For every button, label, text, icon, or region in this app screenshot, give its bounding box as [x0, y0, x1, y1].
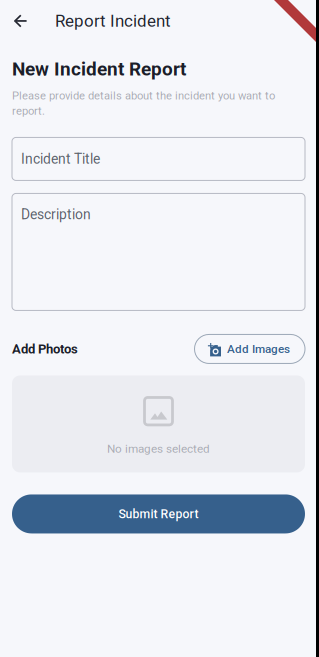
- staticText: Incident Title: [21, 151, 100, 167]
- staticText: Add Photos: [12, 341, 78, 357]
- staticText: Description: [21, 206, 91, 223]
- button[interactable]: Back: [0, 0, 41, 42]
- button[interactable]: Incident Title: [12, 137, 305, 180]
- button[interactable]: Submit Report: [12, 494, 305, 533]
- staticText: Report Incident: [55, 11, 171, 31]
- staticText: Please provide details about the inciden…: [12, 89, 275, 102]
- staticText: New Incident Report: [12, 58, 186, 80]
- staticText: Submit Report: [118, 507, 198, 521]
- staticText: Add Images: [227, 342, 290, 356]
- staticText: No images selected: [107, 442, 210, 456]
- button[interactable]: Add Images: [194, 334, 305, 363]
- staticText: report.: [12, 104, 45, 117]
- button[interactable]: Description: [12, 193, 305, 310]
